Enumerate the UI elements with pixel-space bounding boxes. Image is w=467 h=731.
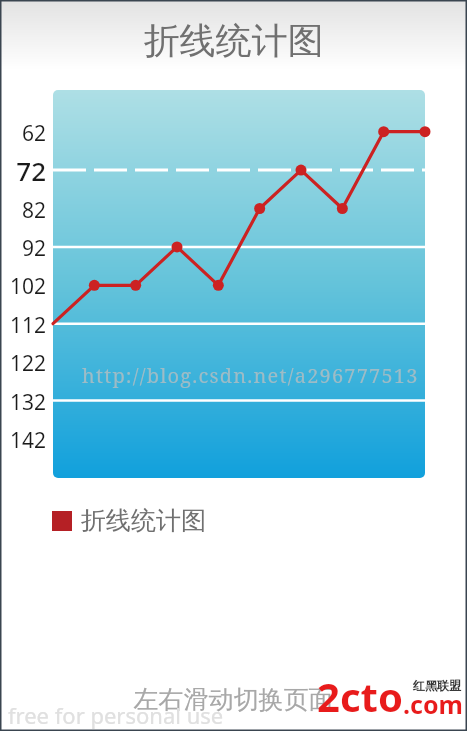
staticText: 72 (0, 153, 46, 188)
staticText: 82 (0, 196, 46, 225)
staticText: 122 (0, 349, 46, 378)
staticText: 112 (0, 311, 46, 340)
staticText: 折线统计图 (0, 18, 467, 63)
staticText: 2cto (317, 669, 403, 723)
staticText: 92 (0, 234, 46, 263)
staticText: 62 (0, 119, 46, 148)
staticText: free for personal use (8, 700, 224, 730)
staticText: 左右滑动切换页面 (0, 684, 467, 715)
staticText: 102 (0, 272, 46, 301)
button[interactable]: 折线统计图 (52, 505, 214, 536)
other: 2cto.com watermark (317, 669, 463, 723)
staticText: 折线统计图 (81, 505, 206, 536)
staticText: http://blog.csdn.net/a296777513 (82, 362, 419, 389)
staticText: 红黑联盟 (413, 678, 461, 693)
staticText: .com (403, 687, 463, 721)
staticText: 142 (0, 426, 46, 455)
staticText: 132 (0, 388, 46, 417)
